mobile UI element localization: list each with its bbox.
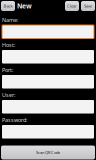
staticText: New — [17, 2, 32, 10]
staticText: User: — [2, 91, 15, 99]
staticText: Port: — [2, 66, 13, 74]
staticText: Host: — [2, 41, 15, 49]
button[interactable]: Scan QR Code — [1, 145, 95, 159]
button[interactable]: Save — [81, 1, 95, 11]
button[interactable]: Clear — [65, 1, 79, 11]
button[interactable]: Back — [1, 1, 15, 11]
staticText: Name: — [2, 16, 18, 24]
staticText: Clear — [67, 3, 77, 9]
staticText: Save — [84, 3, 92, 9]
staticText: Password: — [2, 116, 27, 124]
staticText: Back — [3, 3, 12, 9]
staticText: Scan QR Code — [36, 150, 60, 155]
